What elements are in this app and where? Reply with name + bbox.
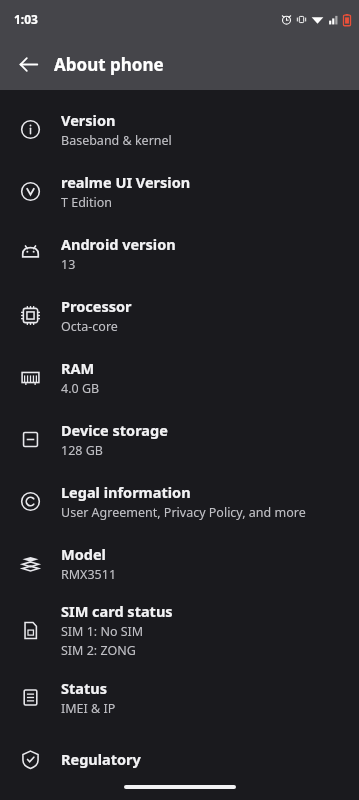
staticText: RAM (61, 358, 95, 378)
staticText: 128 GB (61, 442, 103, 459)
button[interactable]: Legal information (0, 470, 359, 532)
button[interactable]: RAM (0, 346, 359, 408)
staticText: SIM card status (61, 601, 173, 621)
staticText: SIM 1: No SIM (61, 623, 144, 640)
staticText: 1:03 (14, 11, 38, 27)
button[interactable]: Model (0, 532, 359, 594)
button[interactable]: Back (8, 44, 48, 84)
button[interactable]: Android version (0, 222, 359, 284)
staticText: T Edition (61, 194, 113, 211)
staticText: RMX3511 (61, 566, 117, 583)
button[interactable]: realme UI Version (0, 160, 359, 222)
button[interactable]: Status (0, 666, 359, 728)
button[interactable]: Processor (0, 284, 359, 346)
button[interactable]: Device storage (0, 408, 359, 470)
staticText: IMEI & IP (61, 700, 116, 717)
staticText: Octa-core (61, 318, 118, 335)
staticText: 13 (61, 256, 76, 273)
staticText: Legal information (61, 482, 191, 502)
button[interactable]: Regulatory (0, 728, 359, 790)
staticText: realme UI Version (61, 172, 191, 192)
staticText: 4.0 GB (61, 380, 100, 397)
staticText: Status (61, 678, 107, 698)
staticText: User Agreement, Privacy Policy, and more (61, 504, 306, 521)
staticText: About phone (54, 53, 164, 76)
button[interactable]: Version (0, 98, 359, 160)
staticText: Regulatory (61, 749, 141, 769)
staticText: Device storage (61, 420, 168, 440)
staticText: Android version (61, 234, 176, 254)
staticText: Version (61, 110, 116, 130)
button[interactable]: SIM card status (0, 594, 359, 666)
staticText: Processor (61, 296, 132, 316)
staticText: Model (61, 544, 106, 564)
staticText: SIM 2: ZONG (61, 642, 136, 659)
staticText: Baseband & kernel (61, 132, 172, 149)
